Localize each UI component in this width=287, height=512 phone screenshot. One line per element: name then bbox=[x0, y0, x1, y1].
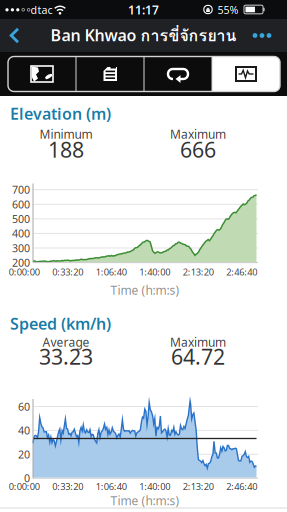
staticText: 40 bbox=[18, 423, 30, 437]
staticText: 500 bbox=[12, 212, 30, 226]
staticText: 1:40:00 bbox=[139, 266, 170, 278]
staticText: 0:00:00 bbox=[9, 266, 40, 278]
staticText: 2:46:40 bbox=[226, 480, 257, 493]
staticText: 11:17 bbox=[128, 2, 159, 18]
staticText: 666 bbox=[180, 135, 216, 164]
staticText: 0:33:20 bbox=[52, 480, 83, 493]
staticText: 1:06:40 bbox=[96, 266, 127, 278]
staticText: 64.72 bbox=[171, 342, 225, 371]
staticText: Time (h:m:s) bbox=[110, 492, 179, 508]
staticText: 2:13:20 bbox=[183, 266, 214, 278]
staticText: 1:06:40 bbox=[96, 480, 127, 493]
staticText: 55% bbox=[217, 3, 238, 17]
staticText: 20 bbox=[18, 447, 30, 461]
staticText: 200 bbox=[12, 255, 30, 270]
button[interactable]: Map bbox=[0, 0, 287, 512]
staticText: 0:33:20 bbox=[52, 266, 83, 278]
button[interactable]: Details bbox=[0, 0, 287, 512]
staticText: Ban Khwao การขี่จักรยาน bbox=[50, 23, 236, 48]
staticText: 2:13:20 bbox=[183, 480, 214, 493]
staticText: 1:40:00 bbox=[139, 480, 170, 493]
staticText: 188 bbox=[48, 135, 84, 164]
staticText: Time (h:m:s) bbox=[110, 282, 179, 298]
button[interactable]: Laps bbox=[0, 0, 287, 512]
staticText: 600 bbox=[12, 197, 30, 211]
staticText: 400 bbox=[12, 226, 30, 240]
staticText: Minimum bbox=[39, 126, 92, 142]
staticText: Maximum bbox=[170, 126, 226, 142]
staticText: dtac bbox=[30, 3, 52, 17]
staticText: Speed (km/h) bbox=[10, 313, 111, 334]
staticText: 33.23 bbox=[39, 342, 93, 371]
staticText: Maximum bbox=[170, 334, 226, 350]
staticText: 0:00:00 bbox=[9, 480, 40, 493]
staticText: 60 bbox=[18, 399, 30, 414]
staticText: Average bbox=[42, 334, 89, 350]
staticText: 0 bbox=[24, 471, 30, 485]
button[interactable]: Charts bbox=[0, 0, 287, 512]
staticText: Elevation (m) bbox=[10, 103, 111, 124]
staticText: 2:46:40 bbox=[226, 266, 257, 278]
button[interactable]: More bbox=[0, 0, 287, 512]
staticText: 300 bbox=[12, 241, 30, 255]
staticText: 700 bbox=[12, 183, 30, 197]
button[interactable]: Back bbox=[0, 0, 287, 512]
